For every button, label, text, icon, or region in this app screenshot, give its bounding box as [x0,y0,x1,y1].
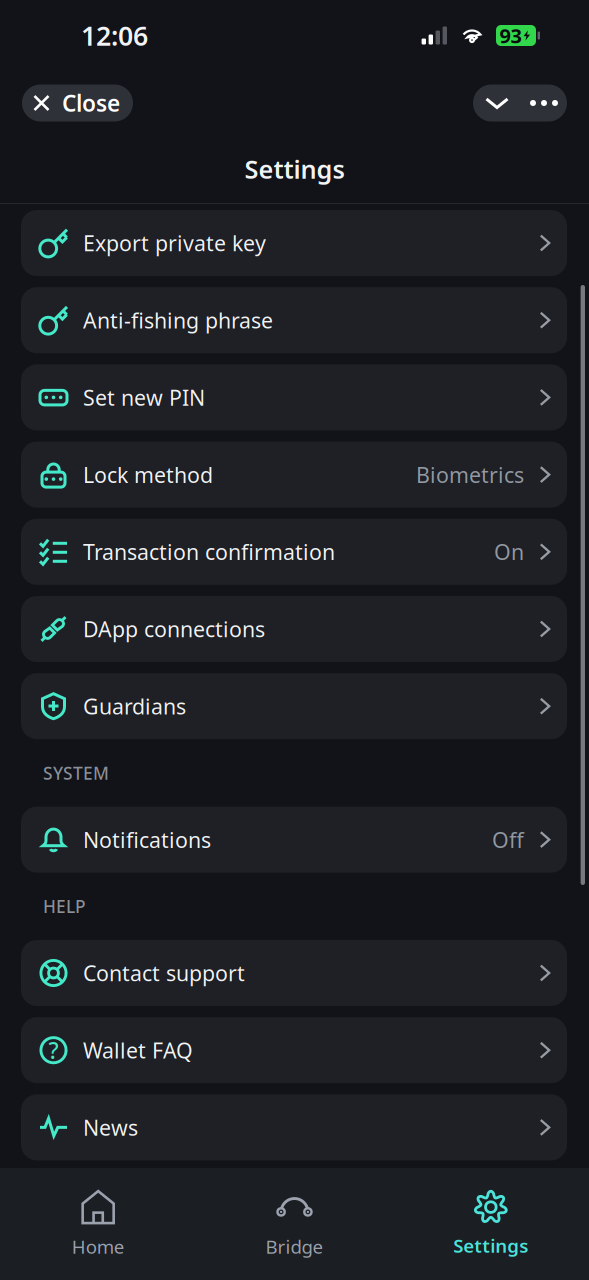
button[interactable]: ? [21,1017,567,1083]
staticText: Set new PIN [83,383,205,411]
staticText: Off [492,825,524,854]
staticText: SYSTEM [43,761,109,784]
staticText: Close [62,88,120,118]
button[interactable]: News [21,1094,567,1160]
button[interactable]: Contact support [21,940,567,1006]
button[interactable]: Settings [393,1174,589,1274]
staticText: Biometrics [416,460,524,489]
button[interactable]: Notifications [21,807,567,873]
staticText: Transaction confirmation [83,538,335,566]
button[interactable]: Collapse [473,84,521,121]
staticText: Lock method [83,460,213,489]
button[interactable]: DApp connections [21,596,567,662]
staticText: Notifications [83,825,211,854]
staticText: Export private key [83,229,266,257]
staticText: Home [72,1234,125,1259]
staticText: Settings [453,1233,528,1258]
staticText: ? [48,1035,58,1065]
staticText: News [83,1113,138,1141]
button[interactable]: Export private key [21,210,567,276]
staticText: Wallet FAQ [83,1036,193,1064]
staticText: Anti-fishing phrase [83,306,273,334]
button[interactable]: Lock method [21,442,567,508]
button[interactable]: Home [0,1174,196,1274]
staticText: DApp connections [83,615,265,643]
button[interactable]: Set new PIN [21,364,567,430]
button[interactable]: Bridge [196,1174,393,1274]
staticText: Guardians [83,692,186,720]
staticText: Contact support [83,959,245,987]
button[interactable]: More [521,84,567,121]
staticText: Bridge [265,1234,323,1259]
staticText: On [494,538,524,566]
button[interactable]: Anti-fishing phrase [21,287,567,353]
staticText: HELP [43,895,86,918]
button[interactable]: Guardians [21,673,567,739]
staticText: Settings [244,152,344,186]
staticText: 12:06 [81,18,148,53]
button[interactable]: Close [22,84,133,121]
button[interactable]: Transaction confirmation [21,519,567,585]
staticText: 93 [499,22,521,49]
